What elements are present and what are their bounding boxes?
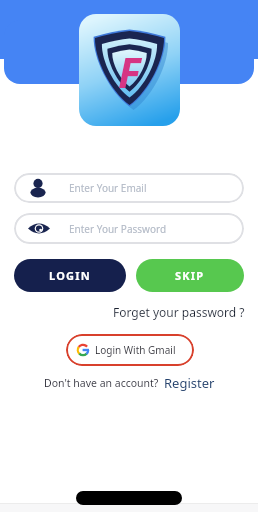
button[interactable]: Enter Your Email xyxy=(14,173,244,203)
staticText: SKIP xyxy=(175,268,205,283)
button[interactable]: LOGIN xyxy=(14,259,126,292)
staticText: Don't have an account? xyxy=(44,376,159,390)
staticText: Enter Your Email xyxy=(69,181,147,195)
button[interactable]: Login With Gmail xyxy=(66,334,194,366)
staticText: LOGIN xyxy=(49,268,91,283)
staticText: F xyxy=(118,43,141,100)
button[interactable]: Register xyxy=(164,374,215,392)
button[interactable]: SKIP xyxy=(136,259,244,292)
staticText: Enter Your Password xyxy=(69,222,167,236)
button[interactable]: Enter Your Password xyxy=(14,213,244,244)
staticText: Login With Gmail xyxy=(95,343,176,357)
button[interactable]: Forget your password ? xyxy=(113,304,245,320)
